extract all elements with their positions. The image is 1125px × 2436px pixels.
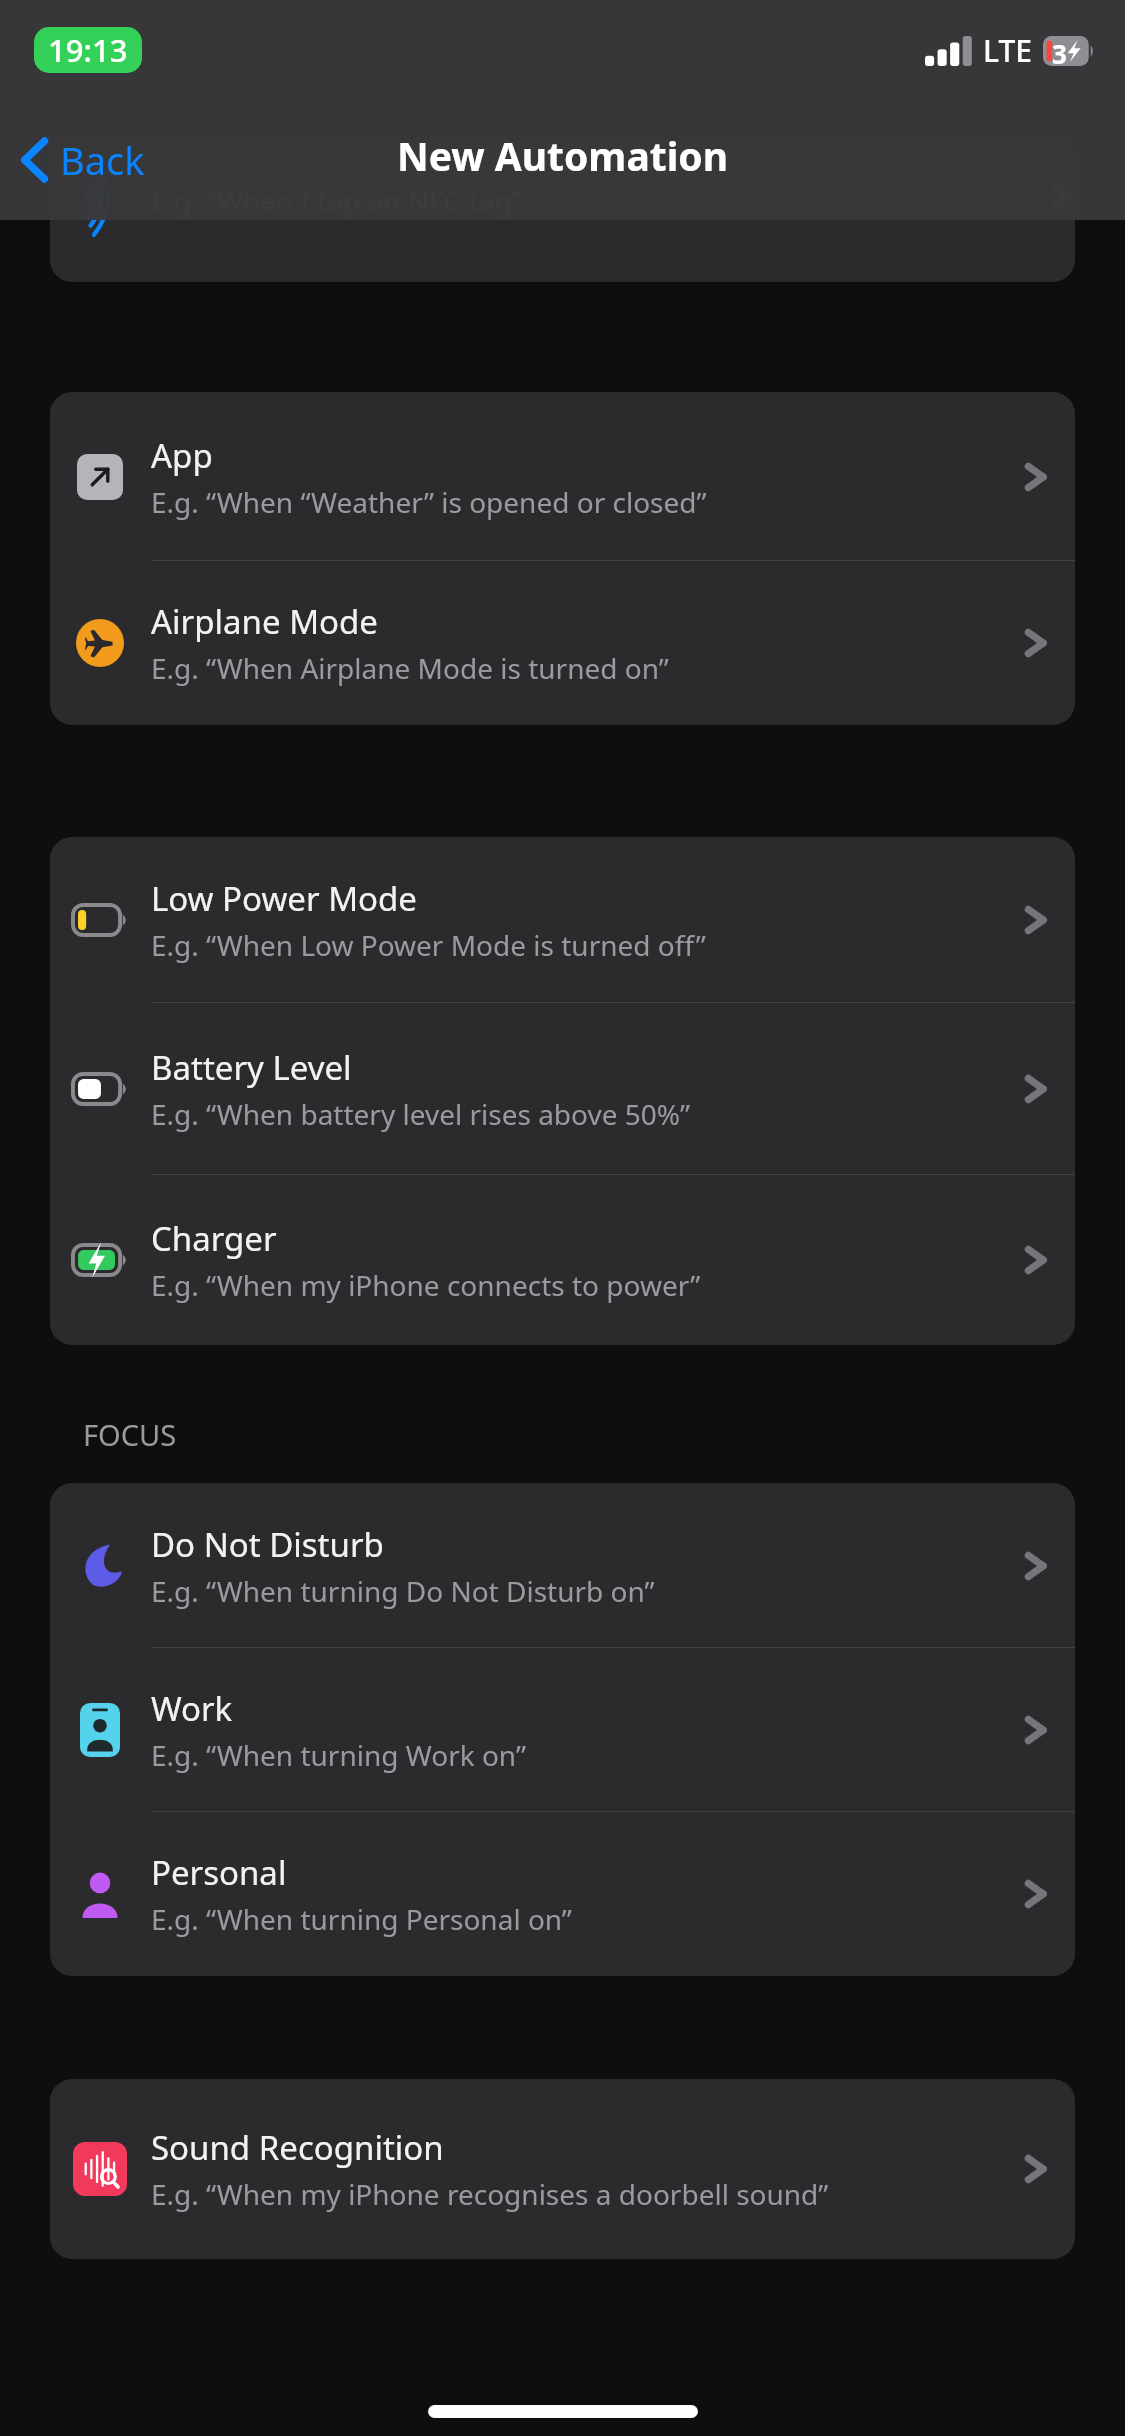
button[interactable]: Sound Recognition (50, 2079, 1075, 2259)
button[interactable]: Personal (50, 1812, 1075, 1976)
staticText: Work (151, 1686, 233, 1731)
staticText: E.g. “When Airplane Mode is turned on” (151, 649, 669, 687)
staticText: Personal (151, 1850, 287, 1895)
staticText: FOCUS (83, 1415, 177, 1454)
staticText: 3 (1052, 36, 1067, 66)
staticText: LTE (983, 30, 1032, 71)
button[interactable]: Battery Level (50, 1003, 1075, 1175)
staticText: 19:13 (48, 29, 128, 71)
staticText: E.g. “When turning Personal on” (151, 1900, 572, 1938)
staticText: Low Power Mode (151, 876, 417, 921)
staticText: E.g. “When “Weather” is opened or closed… (151, 483, 707, 521)
staticText: Charger (151, 1216, 277, 1261)
staticText: E.g. “When my iPhone connects to power” (151, 1266, 701, 1304)
staticText: Back (60, 134, 145, 186)
staticText: Sound Recognition (151, 2125, 444, 2170)
staticText: New Automation (397, 129, 729, 182)
staticText: E.g. “When turning Work on” (151, 1736, 526, 1774)
button[interactable]: Low Power Mode (50, 837, 1075, 1003)
staticText: E.g. “When turning Do Not Disturb on” (151, 1572, 655, 1610)
button[interactable]: Work (50, 1648, 1075, 1812)
button[interactable]: App (50, 392, 1075, 561)
staticText: Airplane Mode (151, 599, 378, 644)
staticText: E.g. “When Low Power Mode is turned off” (151, 926, 706, 964)
staticText: Battery Level (151, 1045, 352, 1090)
button[interactable]: Back (18, 100, 145, 220)
button[interactable]: Do Not Disturb (50, 1483, 1075, 1648)
staticText: Do Not Disturb (151, 1522, 384, 1567)
staticText: App (151, 433, 213, 478)
button[interactable]: Charger (50, 1175, 1075, 1345)
button[interactable]: E.g. “When I tap an NFC tag” (50, 140, 1075, 282)
staticText: E.g. “When my iPhone recognises a doorbe… (151, 2175, 829, 2213)
staticText: E.g. “When battery level rises above 50%… (151, 1095, 691, 1133)
button[interactable]: Airplane Mode (50, 561, 1075, 725)
